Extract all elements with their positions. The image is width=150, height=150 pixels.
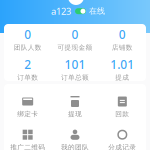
staticText: 在线 xyxy=(89,6,105,16)
staticText: 1.01 xyxy=(110,56,134,72)
staticText: 提成 xyxy=(115,73,129,82)
staticText: 订单数 xyxy=(17,73,38,82)
staticText: 订单总额 xyxy=(61,73,89,82)
staticText: 推广二维码 xyxy=(10,143,45,150)
button[interactable]: 提现 xyxy=(51,96,99,118)
staticText: 0 xyxy=(119,26,126,42)
button[interactable]: 我的团队 xyxy=(51,129,99,150)
staticText: 分成记录 xyxy=(108,143,136,150)
staticText: 0 xyxy=(71,26,78,42)
staticText: 0 xyxy=(24,26,31,42)
staticText: 店铺数 xyxy=(112,43,133,51)
staticText: 提现 xyxy=(68,110,82,118)
staticText: 绑定卡 xyxy=(17,110,38,118)
button[interactable]: 回款 xyxy=(99,96,146,118)
button[interactable]: 分成记录 xyxy=(99,129,146,150)
staticText: 101 xyxy=(64,56,85,72)
staticText: 团队人数 xyxy=(14,43,42,51)
staticText: a123 xyxy=(51,5,71,17)
staticText: 回款 xyxy=(115,110,129,118)
staticText: 我的团队 xyxy=(61,143,89,150)
staticText: 可提现金额 xyxy=(57,43,92,51)
staticText: 2 xyxy=(24,56,31,72)
button[interactable]: 绑定卡 xyxy=(4,96,51,118)
button[interactable]: 推广二维码 xyxy=(4,129,51,150)
